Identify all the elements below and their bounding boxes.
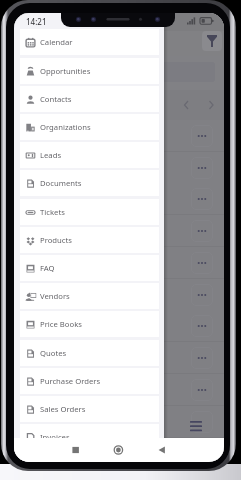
staticText: Purchase Orders [40, 376, 101, 386]
button[interactable]: Price Books [20, 311, 159, 337]
button[interactable]: More options [191, 188, 213, 210]
button[interactable]: Opportunities [20, 58, 159, 84]
button[interactable]: More options [14, 120, 224, 152]
button[interactable]: More options [191, 347, 213, 369]
button[interactable]: More options [191, 315, 213, 337]
button[interactable]: More options [191, 252, 213, 274]
button[interactable]: Purchase Orders [20, 368, 159, 394]
button[interactable]: Tickets [20, 199, 159, 225]
button[interactable]: More options [191, 220, 213, 242]
button[interactable]: Vendors [20, 283, 159, 309]
staticText: 14:21 [26, 16, 47, 27]
staticText: Vendors [40, 291, 70, 301]
button[interactable]: Menu [184, 414, 208, 438]
staticText: Calendar [40, 37, 73, 47]
staticText: Quotes [40, 348, 67, 358]
button[interactable]: Calendar [20, 29, 159, 55]
button[interactable]: Documents [20, 170, 159, 196]
button[interactable]: Organizations [20, 114, 159, 140]
staticText: Price Books [40, 319, 82, 329]
button[interactable]: More options [191, 125, 213, 147]
staticText: Contacts [40, 94, 72, 104]
button[interactable]: More options [14, 247, 224, 279]
staticText: Products [40, 235, 72, 245]
staticText: Documents [40, 178, 82, 188]
button[interactable]: Sales Orders [20, 396, 159, 422]
button[interactable]: More options [14, 342, 224, 374]
button[interactable]: Filter [202, 31, 222, 51]
button[interactable]: More options [191, 411, 213, 433]
button[interactable]: FAQ [20, 255, 159, 281]
button[interactable]: Products [20, 227, 159, 253]
staticText: Opportunities [40, 66, 91, 76]
button[interactable]: More options [14, 279, 224, 311]
button[interactable]: More options [191, 379, 213, 401]
button[interactable]: More options [14, 215, 224, 247]
button[interactable]: Invoices [20, 424, 159, 450]
button[interactable]: More options [191, 284, 213, 306]
staticText: Invoices [40, 432, 70, 442]
button[interactable]: More options [14, 406, 224, 438]
button[interactable]: More options [14, 183, 224, 215]
button[interactable]: Contacts [20, 86, 159, 112]
button[interactable]: More options [14, 152, 224, 184]
button[interactable]: Leads [20, 142, 159, 168]
staticText: Leads [40, 150, 62, 160]
button[interactable]: More options [191, 157, 213, 179]
button[interactable]: More options [14, 310, 224, 342]
staticText: Tickets [40, 207, 65, 217]
staticText: Organizations [40, 122, 91, 132]
button[interactable]: Quotes [20, 340, 159, 366]
staticText: FAQ [40, 263, 55, 273]
staticText: Sales Orders [40, 404, 86, 414]
button[interactable] [14, 62, 215, 82]
button[interactable]: More options [14, 374, 224, 406]
